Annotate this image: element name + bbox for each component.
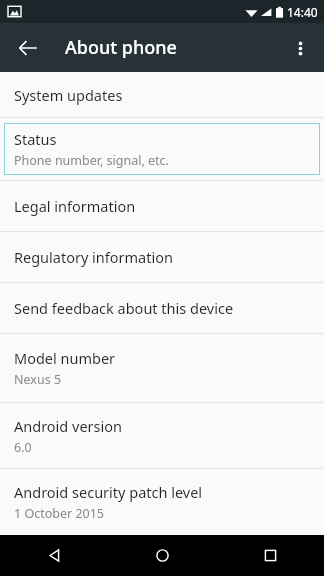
button[interactable]: Home: [108, 535, 216, 576]
staticText: About phone: [65, 35, 177, 60]
button[interactable]: Status: [4, 123, 320, 175]
button[interactable]: Send feedback about this device: [0, 283, 324, 333]
button[interactable]: Android version: [0, 403, 324, 468]
staticText: Model number: [14, 348, 116, 368]
staticText: Nexus 5: [14, 371, 62, 388]
staticText: Android security patch level: [14, 482, 203, 502]
staticText: Android version: [14, 416, 122, 436]
button[interactable]: Regulatory information: [0, 232, 324, 282]
staticText: Regulatory information: [14, 247, 173, 267]
button[interactable]: Legal information: [0, 181, 324, 231]
staticText: 14:40: [287, 4, 318, 20]
staticText: Legal information: [14, 196, 136, 216]
staticText: 1 October 2015: [14, 505, 104, 522]
button[interactable]: Recent apps: [216, 535, 324, 576]
button[interactable]: Back: [9, 29, 47, 67]
button[interactable]: Model number: [0, 334, 324, 402]
staticText: Status: [14, 129, 57, 149]
staticText: Phone number, signal, etc.: [14, 152, 169, 169]
button[interactable]: Back: [0, 535, 108, 576]
button[interactable]: Android security patch level: [0, 469, 324, 534]
staticText: Send feedback about this device: [14, 298, 234, 318]
staticText: 6.0: [14, 439, 32, 456]
staticText: System updates: [14, 85, 123, 105]
button[interactable]: More options: [281, 29, 319, 67]
button[interactable]: System updates: [0, 72, 324, 117]
